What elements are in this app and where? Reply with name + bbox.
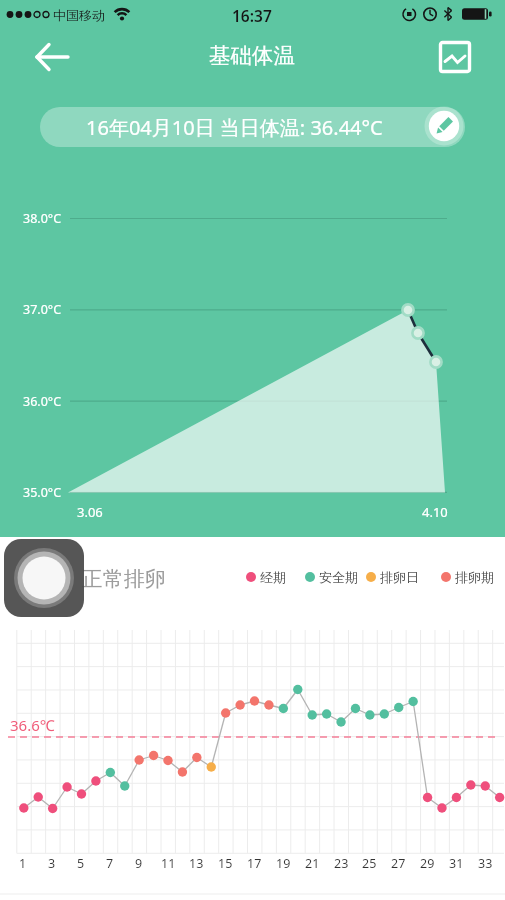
staticText: 5 [77, 855, 85, 872]
button[interactable]: 经期 [246, 566, 286, 588]
button[interactable]: 安全期 [305, 566, 358, 588]
staticText: 29 [420, 855, 435, 872]
staticText: （1/6）正常排卵 [8, 564, 166, 593]
staticText: 38.0°C [23, 210, 62, 227]
staticText: 36.0°C [23, 393, 62, 410]
button[interactable] [26, 38, 74, 76]
staticText: 31 [449, 855, 464, 872]
staticText: 中国移动 [53, 7, 105, 23]
button[interactable] [4, 539, 84, 617]
staticText: 27 [391, 855, 406, 872]
button[interactable]: 排卵期 [441, 566, 494, 588]
staticText: 35.0°C [23, 484, 62, 501]
button[interactable]: 16年04月10日 当日体温: 36.44°C [40, 107, 465, 147]
button[interactable]: 排卵日 [366, 566, 419, 588]
staticText: 3.06 [77, 503, 103, 521]
staticText: 11 [161, 855, 176, 872]
staticText: 19 [276, 855, 291, 872]
staticText: 经期 [260, 569, 286, 585]
button[interactable] [424, 106, 464, 146]
staticText: 3 [48, 855, 56, 872]
staticText: 37.0°C [23, 301, 62, 318]
staticText: 25 [362, 855, 377, 872]
staticText: 基础体温 [209, 42, 295, 69]
staticText: 16:37 [232, 5, 272, 26]
staticText: 21 [305, 855, 320, 872]
staticText: 23 [334, 855, 349, 872]
button[interactable] [434, 36, 476, 78]
staticText: 15 [218, 855, 233, 872]
staticText: 36.6℃ [10, 715, 55, 735]
staticText: 排卵日 [380, 569, 419, 585]
staticText: 排卵期 [455, 569, 494, 585]
staticText: 4.10 [422, 503, 448, 521]
staticText: 17 [247, 855, 262, 872]
staticText: 安全期 [319, 569, 358, 585]
staticText: 16年04月10日 当日体温: 36.44°C [86, 114, 383, 141]
staticText: 33 [478, 855, 493, 872]
staticText: 9 [135, 855, 143, 872]
staticText: 1 [19, 855, 27, 872]
staticText: 13 [189, 855, 204, 872]
staticText: 7 [106, 855, 114, 872]
